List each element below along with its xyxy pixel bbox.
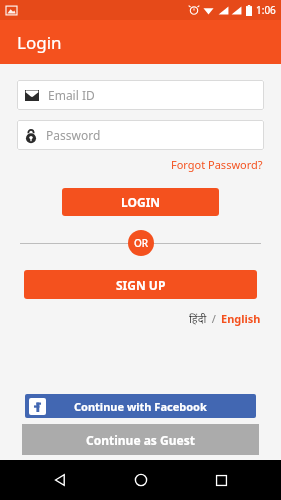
button[interactable]: Continue with Facebook [25, 394, 256, 418]
staticText: English [221, 311, 261, 326]
staticText: Forgot Password? [171, 157, 263, 172]
button[interactable]: Forgot Password? [171, 155, 281, 174]
staticText: OR [134, 236, 149, 250]
button[interactable]: LOGIN [62, 188, 219, 216]
button[interactable]: Recent apps [201, 460, 241, 500]
button[interactable]: Home [121, 460, 161, 500]
button[interactable]: Email ID [17, 80, 264, 110]
staticText: / [209, 311, 219, 326]
staticText: LOGIN [121, 194, 161, 210]
button[interactable]: Continue as Guest [22, 424, 259, 455]
button[interactable]: Back [40, 460, 80, 500]
staticText: Email ID [48, 87, 95, 103]
staticText: 1:06 [256, 3, 276, 17]
staticText: Password [46, 127, 101, 143]
staticText: हिंदी [189, 311, 207, 326]
staticText: SIGN UP [116, 277, 166, 293]
button[interactable]: English [219, 309, 263, 328]
button[interactable]: हिंदी [187, 309, 209, 328]
staticText: Login [17, 31, 62, 54]
staticText: Continue with Facebook [74, 399, 207, 414]
staticText: Continue as Guest [86, 432, 195, 448]
button[interactable]: SIGN UP [24, 270, 257, 299]
button[interactable]: Password [17, 120, 264, 150]
